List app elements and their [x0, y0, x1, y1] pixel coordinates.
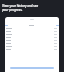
button[interactable]: Back	[5, 25, 8, 26]
button[interactable]	[5, 36, 59, 39]
button[interactable]	[5, 30, 59, 33]
button[interactable]	[5, 39, 59, 42]
button[interactable]: Primary action	[10, 67, 54, 69]
button[interactable]	[5, 27, 59, 30]
button[interactable]	[5, 33, 59, 36]
button[interactable]: Filter	[56, 25, 59, 26]
button[interactable]	[5, 42, 59, 45]
staticText: View your history and see	[2, 4, 39, 8]
button[interactable]	[5, 48, 59, 51]
staticText: your progress.	[2, 8, 23, 12]
button[interactable]	[5, 45, 59, 48]
